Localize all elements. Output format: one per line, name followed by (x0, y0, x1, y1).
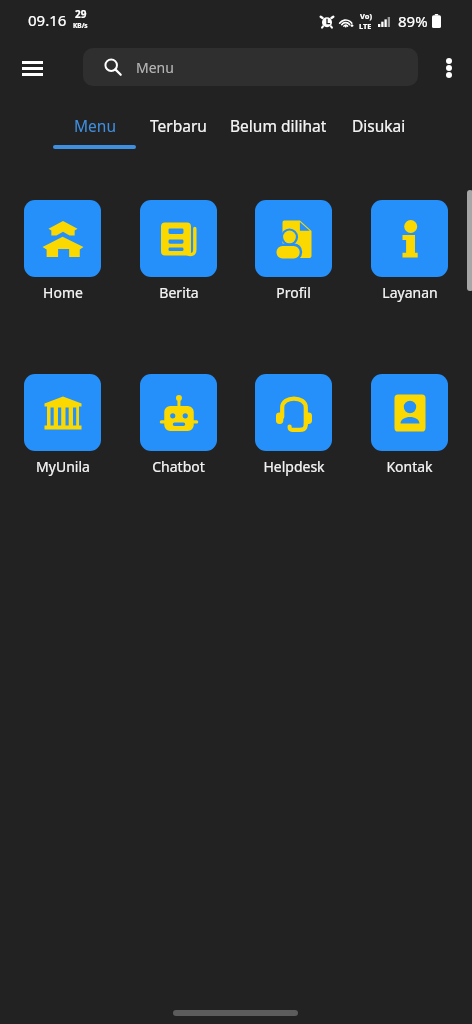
staticText: Chatbot (152, 457, 205, 476)
staticText: Terbaru (150, 115, 207, 136)
button[interactable]: Open navigation menu (10, 46, 55, 91)
staticText: Menu (136, 58, 174, 77)
staticText: Profil (276, 283, 311, 302)
button[interactable]: Profil (255, 200, 332, 302)
button[interactable]: Helpdesk (255, 374, 332, 476)
button[interactable]: Kontak (371, 374, 448, 476)
button[interactable]: Home (24, 200, 101, 302)
button[interactable]: Belum dilihat (221, 98, 335, 152)
staticText: KB/s (73, 21, 88, 30)
staticText: 09.16 (28, 10, 67, 30)
button[interactable]: Menu (83, 48, 418, 86)
button[interactable]: Chatbot (140, 374, 217, 476)
button[interactable]: Berita (140, 200, 217, 302)
button[interactable]: Layanan (371, 200, 448, 302)
button[interactable]: More options (427, 46, 471, 90)
staticText: Berita (159, 283, 199, 302)
staticText: 89% (398, 11, 428, 31)
button[interactable]: MyUnila (24, 374, 101, 476)
staticText: LTE (359, 21, 372, 31)
staticText: Helpdesk (263, 457, 325, 476)
button[interactable]: Disukai (335, 98, 422, 152)
staticText: MyUnila (36, 457, 90, 476)
staticText: 29 (75, 7, 87, 21)
staticText: Layanan (382, 283, 438, 302)
staticText: Menu (74, 115, 116, 136)
staticText: Home (43, 283, 83, 302)
staticText: Vo) (360, 11, 372, 21)
staticText: Belum dilihat (230, 115, 327, 136)
staticText: Disukai (352, 115, 406, 136)
staticText: Kontak (386, 457, 433, 476)
button[interactable]: Terbaru (136, 98, 221, 152)
button[interactable]: Menu (53, 98, 136, 152)
